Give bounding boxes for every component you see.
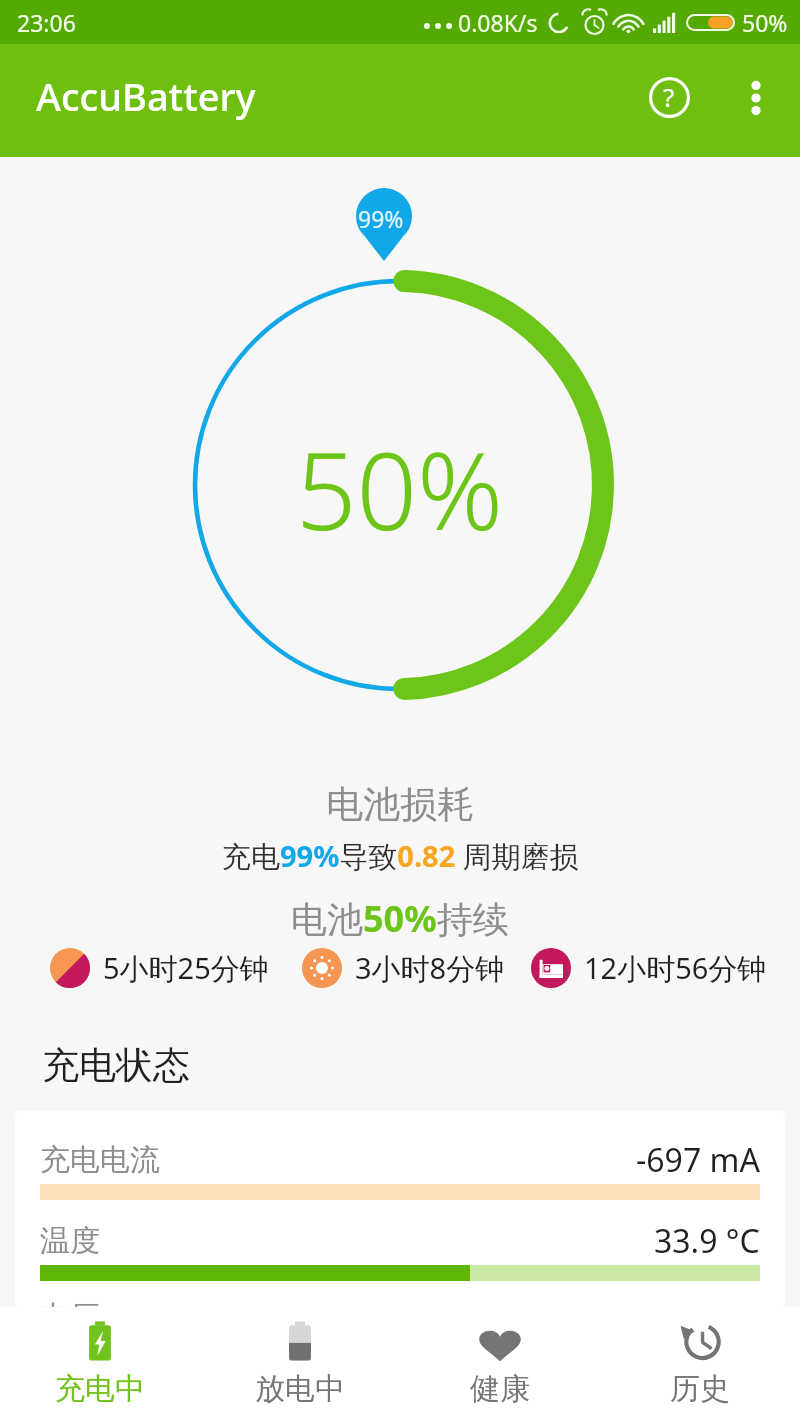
staticText: 3小时8分钟 (355, 948, 505, 988)
staticText: 50% (296, 417, 504, 561)
staticText: 电压 (40, 1298, 100, 1307)
staticText: 50% (742, 7, 788, 38)
staticText: 温度 (40, 1222, 100, 1260)
staticText: 充电99%导致0.82 周期磨损 (222, 836, 579, 876)
staticText: 放电中 (255, 1370, 345, 1408)
button[interactable]: More options (720, 62, 792, 134)
staticText: 历史 (670, 1370, 730, 1408)
staticText: 充电中 (55, 1370, 145, 1408)
staticText: 充电状态 (42, 1042, 190, 1089)
button[interactable]: 健康 (400, 1307, 600, 1421)
staticText: 健康 (470, 1370, 530, 1408)
staticText: 0.08K/s (458, 7, 538, 38)
staticText: 12小时56分钟 (584, 948, 767, 988)
staticText: AccuBattery (36, 70, 256, 122)
staticText: 充电电流 (40, 1141, 160, 1179)
staticText: 电池损耗 (326, 781, 474, 828)
staticText: ? (663, 79, 675, 114)
staticText: 33.9 °C (654, 1219, 760, 1263)
button[interactable]: 放电中 (200, 1307, 400, 1421)
button[interactable]: 充电中 (0, 1307, 200, 1421)
staticText: 23:06 (17, 7, 76, 38)
staticText: 5小时25分钟 (103, 948, 269, 988)
staticText: -697 mA (636, 1138, 760, 1182)
staticText: 电池50%持续 (291, 894, 509, 943)
button[interactable]: Help (631, 59, 707, 135)
button[interactable]: 历史 (600, 1307, 800, 1421)
staticText: 99% (358, 203, 404, 234)
